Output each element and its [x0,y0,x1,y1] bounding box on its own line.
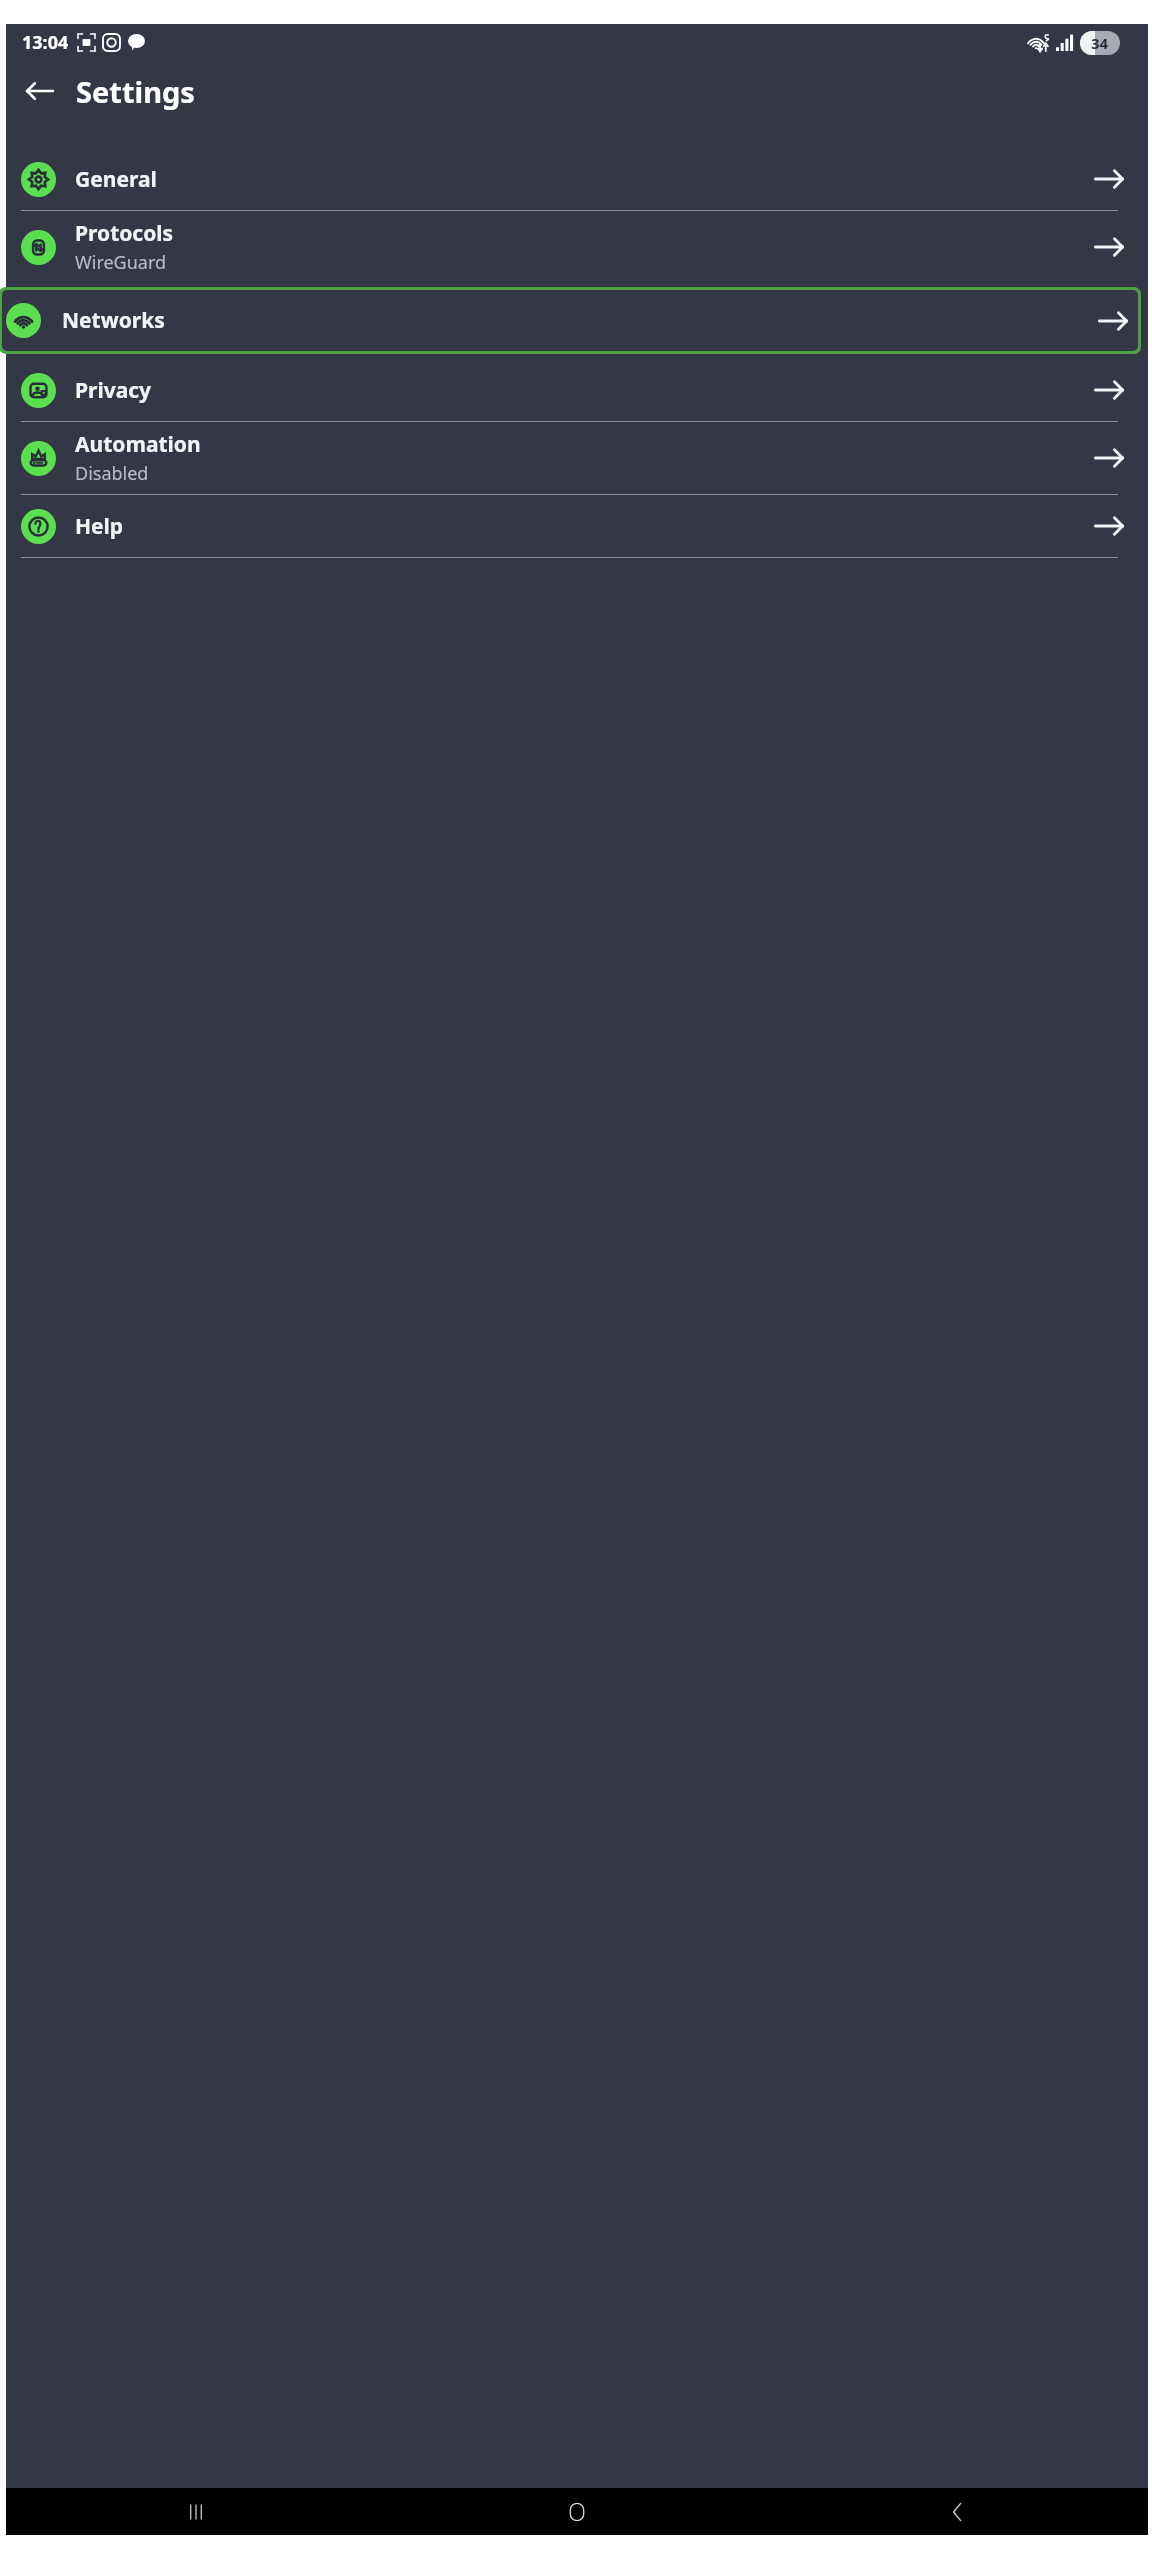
button[interactable]: Networks [2,290,1138,351]
button[interactable]: Help [6,495,1148,557]
button[interactable]: Back [767,2488,1148,2535]
staticText: 34 [1091,33,1109,53]
staticText: WireGuard [75,250,167,275]
button[interactable]: Privacy [6,359,1148,421]
staticText: Help [75,512,124,541]
staticText: 13:04 [22,30,69,55]
button[interactable]: Protocols [6,211,1148,283]
button[interactable]: Automation [6,422,1148,494]
staticText: Settings [76,72,195,111]
staticText: Privacy [75,376,152,405]
button[interactable]: Home [386,2488,767,2535]
staticText: General [75,165,157,194]
staticText: Protocols [75,219,174,248]
staticText: Automation [75,430,201,459]
button[interactable]: General [6,148,1148,210]
staticText: Disabled [75,461,149,486]
button[interactable]: Back [12,63,68,119]
staticText: Networks [62,306,1096,335]
button[interactable]: Recent apps [6,2488,386,2535]
